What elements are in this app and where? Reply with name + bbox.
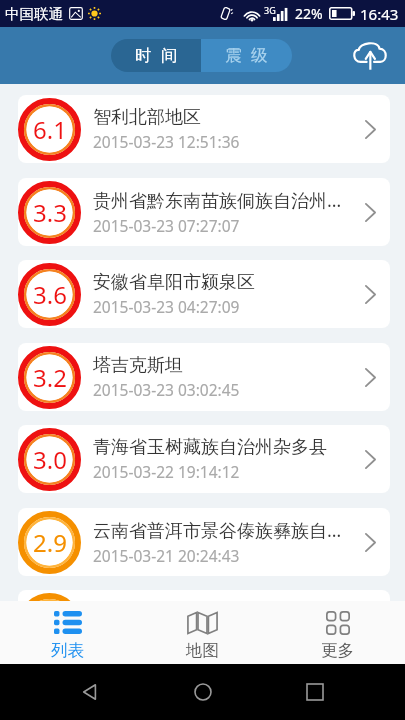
button[interactable]: 安徽省阜阳市颍泉区: [18, 260, 390, 328]
staticText: 智利北部地区: [93, 106, 201, 129]
button[interactable]: 贵州省黔东南苗族侗族自治州…: [18, 178, 390, 246]
staticText: 22%: [295, 4, 323, 23]
button[interactable]: Home: [181, 670, 225, 714]
button[interactable]: 时: [111, 39, 201, 72]
staticText: 2015-03-23 12:51:36: [93, 131, 240, 152]
staticText: 级: [251, 45, 268, 66]
staticText: 安徽省阜阳市颍泉区: [93, 271, 255, 294]
button[interactable]: 更多: [270, 601, 405, 664]
button[interactable]: 四川省凉山彝族自治州: [18, 590, 390, 601]
staticText: 3.3: [33, 196, 67, 229]
staticText: 列表: [51, 640, 84, 661]
button[interactable]: 青海省玉树藏族自治州杂多县: [18, 425, 390, 493]
staticText: 3.0: [33, 443, 67, 476]
staticText: 3.2: [33, 361, 67, 394]
staticText: 3G: [264, 4, 276, 16]
staticText: 时: [135, 45, 152, 66]
button[interactable]: 智利北部地区: [18, 95, 390, 163]
button[interactable]: Upload: [353, 36, 393, 76]
staticText: 2.9: [33, 526, 67, 559]
staticText: 2015-03-23 07:27:07: [93, 215, 240, 236]
staticText: 震: [225, 45, 242, 66]
staticText: 中国联通: [5, 5, 63, 23]
staticText: 更多: [321, 640, 354, 661]
staticText: 青海省玉树藏族自治州杂多县: [93, 436, 327, 459]
staticText: 间: [161, 45, 178, 66]
button[interactable]: 震: [201, 39, 292, 72]
button[interactable]: 塔吉克斯坦: [18, 343, 390, 411]
staticText: 塔吉克斯坦: [93, 354, 183, 377]
button[interactable]: Back: [68, 670, 112, 714]
staticText: 云南省普洱市景谷傣族彝族自…: [93, 518, 342, 543]
staticText: 2015-03-23 03:02:45: [93, 379, 240, 400]
staticText: 2015-03-21 20:24:43: [93, 545, 240, 566]
staticText: 16:43: [360, 4, 399, 24]
staticText: 6.1: [33, 113, 67, 146]
staticText: 2015-03-22 19:14:12: [93, 461, 240, 482]
staticText: 贵州省黔东南苗族侗族自治州…: [93, 188, 342, 213]
button[interactable]: 列表: [0, 601, 135, 664]
button[interactable]: Recents: [293, 670, 337, 714]
button[interactable]: 地图: [135, 601, 270, 664]
staticText: 3.6: [33, 278, 67, 311]
staticText: 地图: [186, 640, 219, 661]
button[interactable]: 云南省普洱市景谷傣族彝族自…: [18, 508, 390, 576]
staticText: 2015-03-23 04:27:09: [93, 296, 240, 317]
